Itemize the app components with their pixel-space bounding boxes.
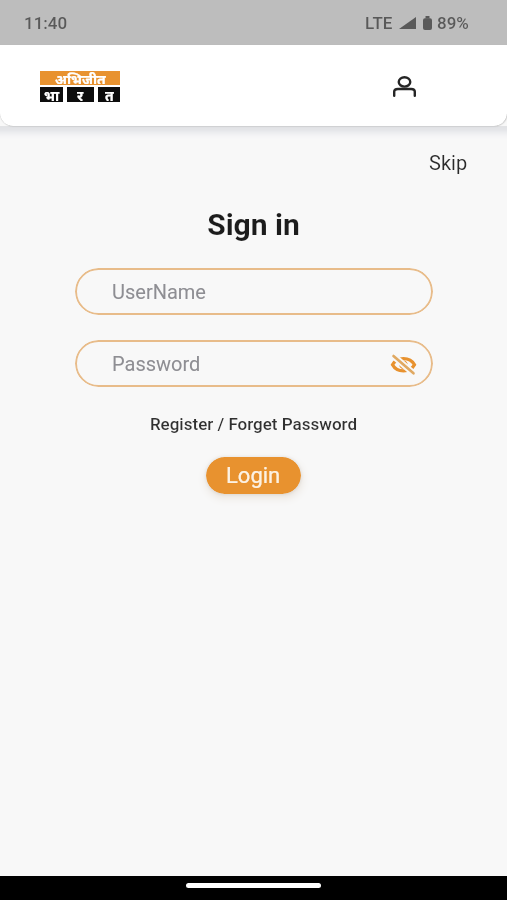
staticText: LTE: [365, 13, 393, 33]
button[interactable]: UserName: [75, 268, 433, 315]
staticText: 89%: [437, 13, 469, 33]
staticText: र: [77, 86, 84, 101]
button[interactable]: Account: [387, 69, 422, 104]
staticText: Skip: [429, 151, 468, 174]
staticText: Password: [112, 352, 201, 375]
staticText: Sign in: [0, 207, 507, 242]
staticText: 11:40: [24, 13, 68, 33]
staticText: UserName: [112, 280, 206, 303]
staticText: Login: [226, 463, 281, 489]
button[interactable]: Login: [206, 457, 301, 494]
staticText: भा: [44, 86, 60, 101]
staticText: अभिजीत: [55, 70, 106, 84]
button[interactable]: Toggle password visibility: [389, 350, 417, 378]
button[interactable]: Password: [75, 340, 433, 387]
staticText: त: [105, 86, 114, 101]
button[interactable]: Skip: [413, 145, 484, 180]
button[interactable]: Register / Forget Password: [0, 414, 507, 434]
